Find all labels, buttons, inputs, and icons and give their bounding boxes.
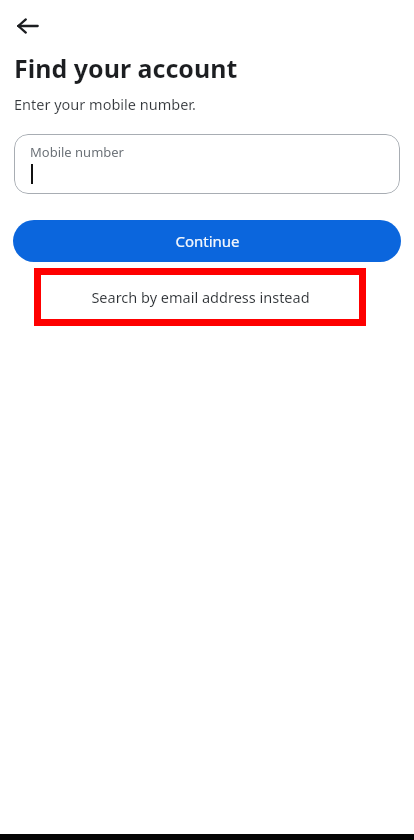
staticText: Find your account: [14, 51, 238, 85]
staticText: Continue: [175, 231, 240, 251]
button[interactable]: Mobile number input: [14, 134, 400, 194]
staticText: Search by email address instead: [91, 287, 310, 307]
button[interactable]: Continue: [13, 220, 401, 262]
button[interactable]: Back: [8, 6, 48, 46]
button[interactable]: Search by email address instead: [34, 268, 366, 326]
staticText: Mobile number: [30, 143, 124, 161]
staticText: Enter your mobile number.: [14, 94, 196, 114]
